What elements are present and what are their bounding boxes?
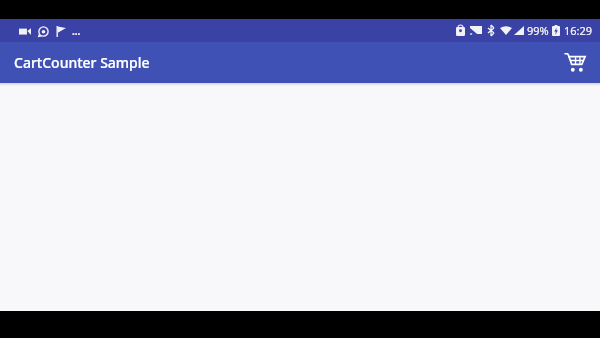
- button[interactable]: Shopping cart: [556, 44, 594, 82]
- staticText: CartCounter Sample: [14, 53, 150, 72]
- staticText: 16:29: [564, 23, 593, 38]
- staticText: 99%: [527, 23, 549, 38]
- staticText: ...: [72, 24, 81, 38]
